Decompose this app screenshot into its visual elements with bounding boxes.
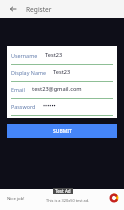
staticText: Username [11,52,38,59]
staticText: Test Ad [55,188,71,194]
staticText: Password [11,103,36,110]
staticText: Test23 [53,68,71,76]
staticText: Email [11,86,25,93]
button[interactable] [0,189,124,210]
button[interactable]: SUBMIT [7,124,117,138]
staticText: Register [26,5,52,14]
staticText: This is a 320x50 test ad. [46,198,90,203]
staticText: •••••• [43,102,56,110]
staticText: SUBMIT [53,128,72,135]
staticText: test23@gmail.com [32,85,82,93]
staticText: Nice job! [7,195,25,201]
staticText: Test23 [45,51,63,59]
staticText: Display Name [11,69,46,76]
button[interactable]: Back [4,0,21,17]
